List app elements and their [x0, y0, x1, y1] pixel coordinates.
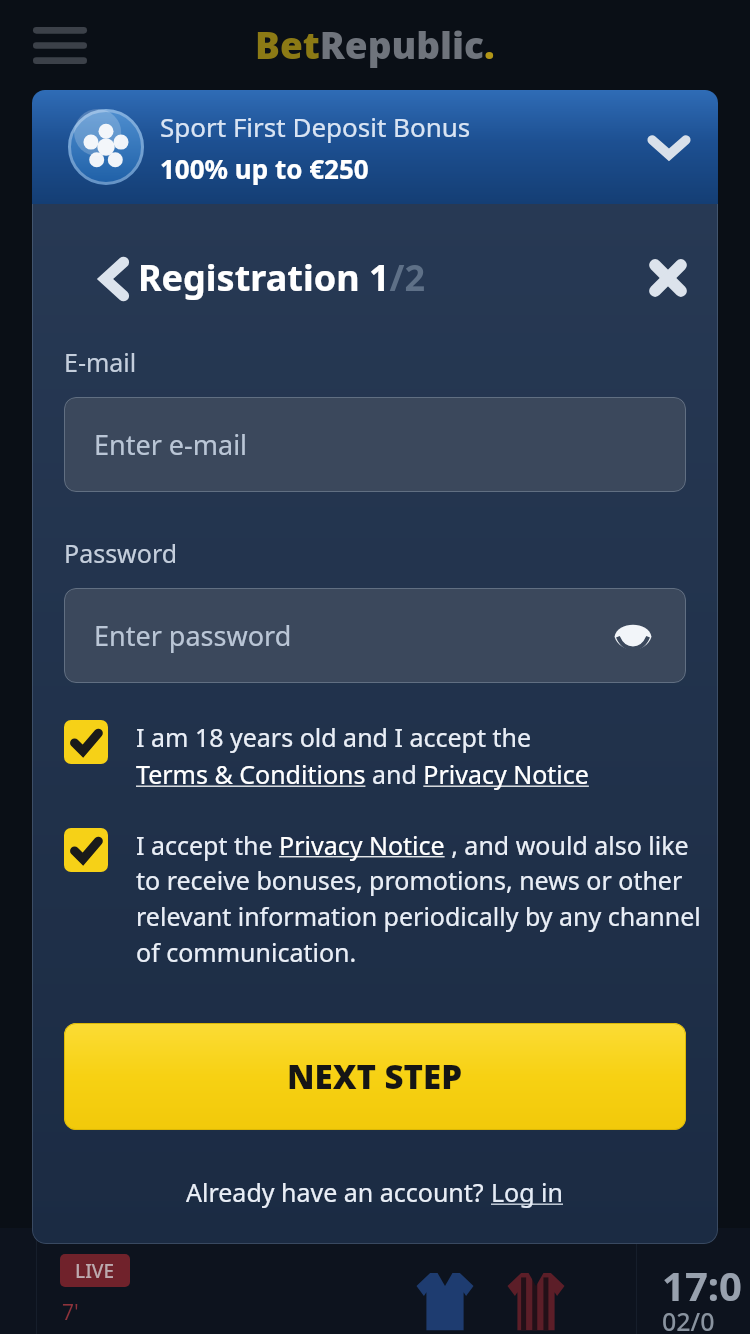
staticText: LIVE	[75, 1258, 115, 1284]
staticText: Enter password	[94, 617, 292, 654]
button[interactable]: Close	[645, 255, 691, 301]
button[interactable]: Expand bonus details	[648, 133, 690, 161]
button[interactable]: Open navigation menu	[33, 27, 87, 64]
staticText: I accept the Privacy Notice , and would …	[136, 828, 704, 970]
staticText: 17:0	[662, 1258, 742, 1312]
staticText: Log in	[491, 1175, 564, 1209]
staticText: BetRepublic.	[255, 19, 495, 69]
staticText: Already have an account?	[186, 1175, 491, 1209]
staticText: 7'	[62, 1298, 79, 1327]
button[interactable]: Checked	[64, 720, 108, 764]
button[interactable]: Checked	[64, 828, 704, 970]
staticText: 100% up to €250	[160, 151, 369, 186]
staticText: Password	[64, 536, 178, 570]
button[interactable]: Back	[98, 258, 130, 300]
staticText: Enter e-mail	[94, 426, 248, 463]
button[interactable]: E-mail input	[64, 397, 686, 492]
button[interactable]: Show password	[612, 619, 654, 653]
button[interactable]: NEXT STEP	[64, 1023, 686, 1130]
staticText: I am 18 years old and I accept the Terms…	[136, 720, 589, 791]
staticText: Sport First Deposit Bonus	[160, 109, 471, 144]
button[interactable]: Checked	[64, 720, 694, 791]
staticText: 02/0	[662, 1304, 715, 1334]
button[interactable]: Log in	[491, 1175, 564, 1209]
button[interactable]: Password input	[64, 588, 686, 683]
button[interactable]: Sport First Deposit Bonus	[32, 90, 718, 204]
staticText: E-mail	[64, 345, 137, 379]
staticText: NEXT STEP	[287, 1054, 463, 1099]
button[interactable]: Checked	[64, 828, 108, 872]
staticText: Registration 1/2	[138, 253, 426, 302]
